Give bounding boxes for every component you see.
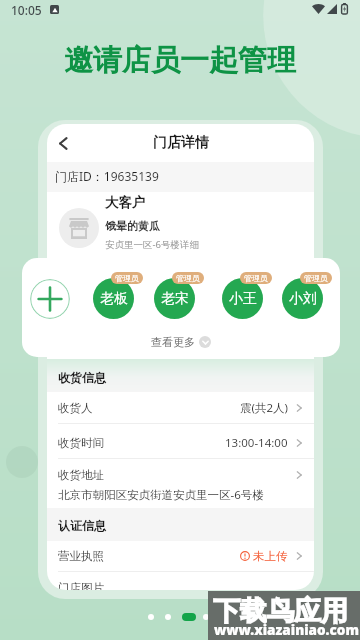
staticText: 10:05 bbox=[11, 2, 42, 18]
staticText: 查看更多 bbox=[151, 335, 195, 349]
staticText: 管理员 bbox=[304, 273, 328, 283]
staticText: 老板 bbox=[100, 290, 128, 308]
staticText: 收货人 bbox=[58, 401, 93, 415]
button[interactable]: 老板 bbox=[93, 278, 134, 319]
staticText: 管理员 bbox=[176, 273, 200, 283]
staticText: 收货地址 bbox=[58, 468, 104, 482]
staticText: 认证信息 bbox=[58, 518, 106, 533]
staticText: 收货信息 bbox=[58, 370, 106, 385]
staticText: 邀请店员一起管理 bbox=[64, 42, 296, 79]
button[interactable]: 老宋 bbox=[154, 278, 195, 319]
button[interactable]: 收货人 bbox=[47, 393, 314, 423]
staticText: 饿晕的黄瓜 bbox=[105, 219, 160, 233]
staticText: 未上传 bbox=[253, 549, 288, 563]
staticText: 管理员 bbox=[244, 273, 268, 283]
staticText: 营业执照 bbox=[58, 549, 104, 563]
button[interactable]: 查看更多 bbox=[151, 335, 211, 349]
staticText: 下载鸟应用 bbox=[213, 594, 348, 628]
button[interactable]: 收货时间 bbox=[47, 428, 314, 458]
button[interactable]: 小王 bbox=[222, 278, 263, 319]
staticText: 小王 bbox=[229, 290, 257, 308]
staticText: 小刘 bbox=[289, 290, 317, 308]
staticText: 13:00-14:00 bbox=[225, 435, 288, 451]
staticText: 安贞里一区-6号楼详细 bbox=[105, 238, 199, 251]
button[interactable]: 收货地址 bbox=[47, 462, 314, 503]
staticText: 北京市朝阳区安贞街道安贞里一区-6号楼 bbox=[58, 487, 264, 503]
staticText: 老宋 bbox=[161, 290, 189, 308]
staticText: 收货时间 bbox=[58, 436, 104, 450]
staticText: www.xiazainiao.com bbox=[214, 621, 359, 639]
staticText: 震(共2人) bbox=[240, 400, 288, 416]
staticText: 大客户 bbox=[105, 194, 146, 211]
staticText: 管理员 bbox=[115, 273, 139, 283]
button[interactable]: 小刘 bbox=[282, 278, 323, 319]
button[interactable]: Add member bbox=[30, 279, 70, 319]
button[interactable]: 营业执照 bbox=[47, 540, 314, 571]
staticText: 门店图片 bbox=[58, 581, 104, 590]
button[interactable]: Back bbox=[54, 134, 73, 153]
staticText: 门店ID：19635139 bbox=[55, 168, 159, 184]
staticText: 门店详情 bbox=[153, 134, 209, 152]
